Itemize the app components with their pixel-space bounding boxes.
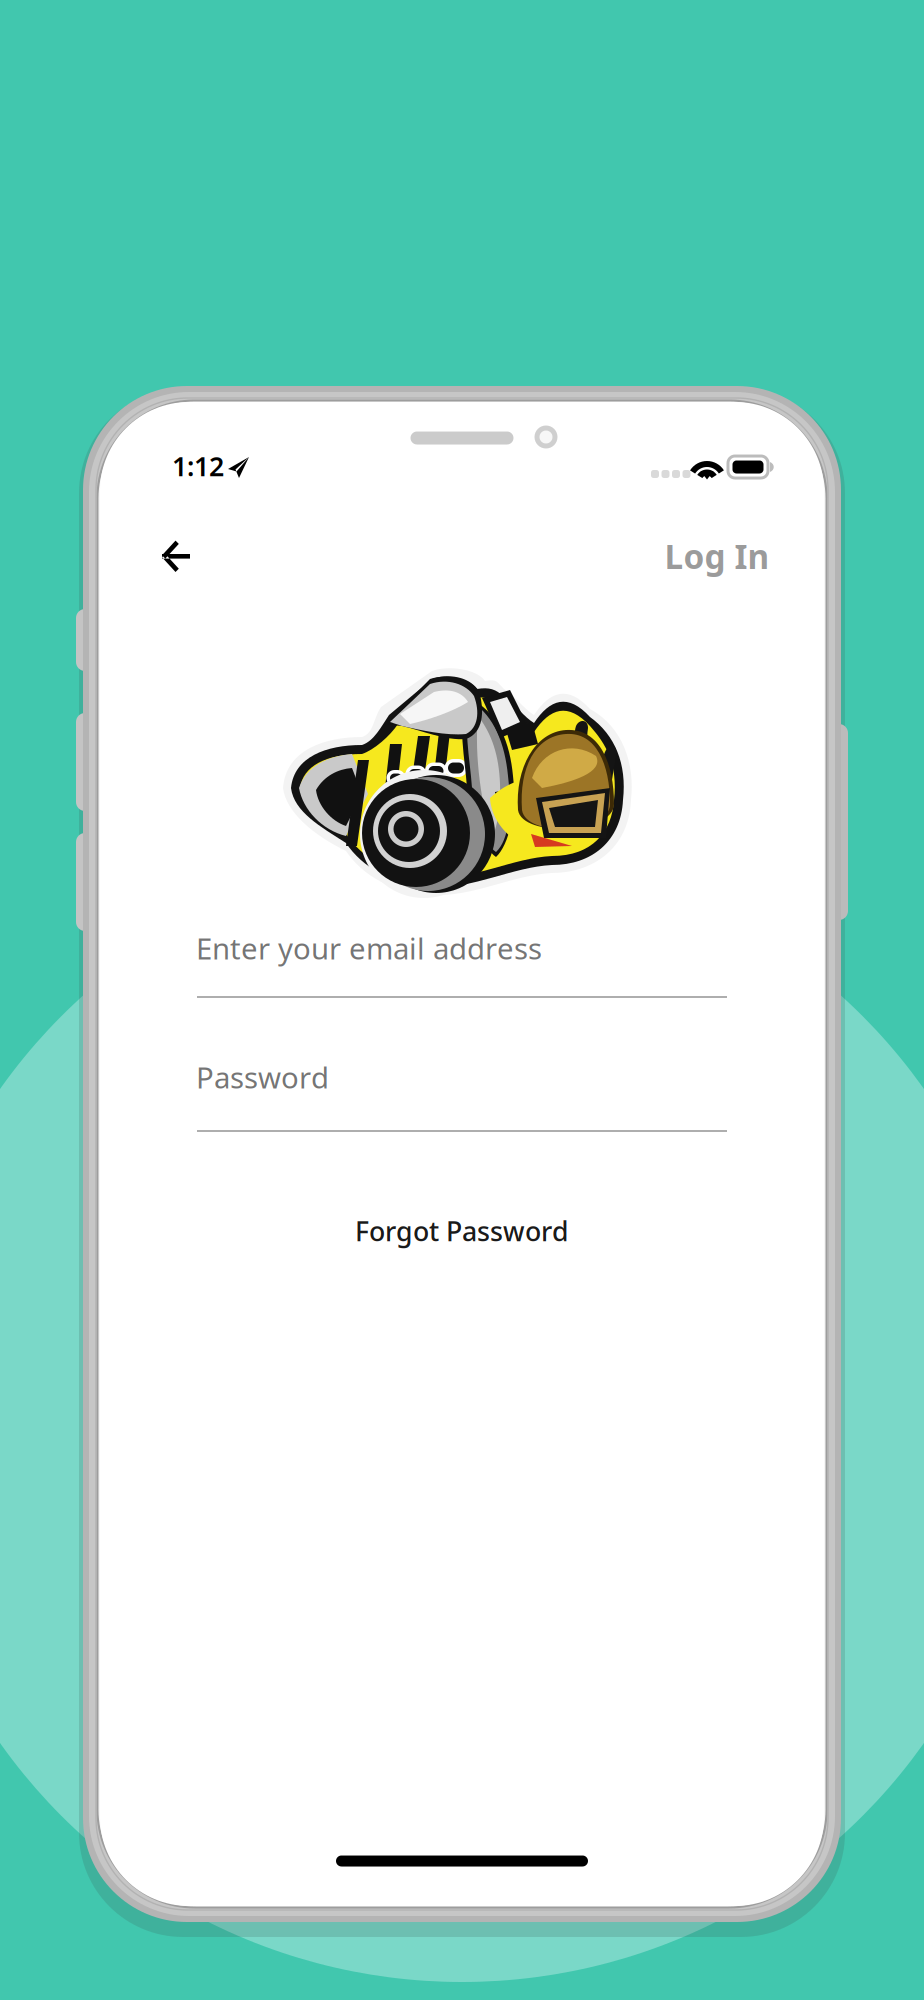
button[interactable]: Password: [195, 1035, 729, 1119]
staticText: Log In: [664, 534, 769, 578]
button[interactable]: Enter your email address: [195, 906, 729, 990]
button[interactable]: Forgot Password: [337, 1199, 587, 1263]
button[interactable]: Log In: [650, 522, 783, 590]
staticText: Enter your email address: [196, 928, 542, 967]
staticText: Password: [196, 1057, 329, 1096]
staticText: Forgot Password: [355, 1213, 569, 1249]
staticText: 1:12: [172, 448, 224, 484]
button[interactable]: Back: [134, 514, 218, 598]
